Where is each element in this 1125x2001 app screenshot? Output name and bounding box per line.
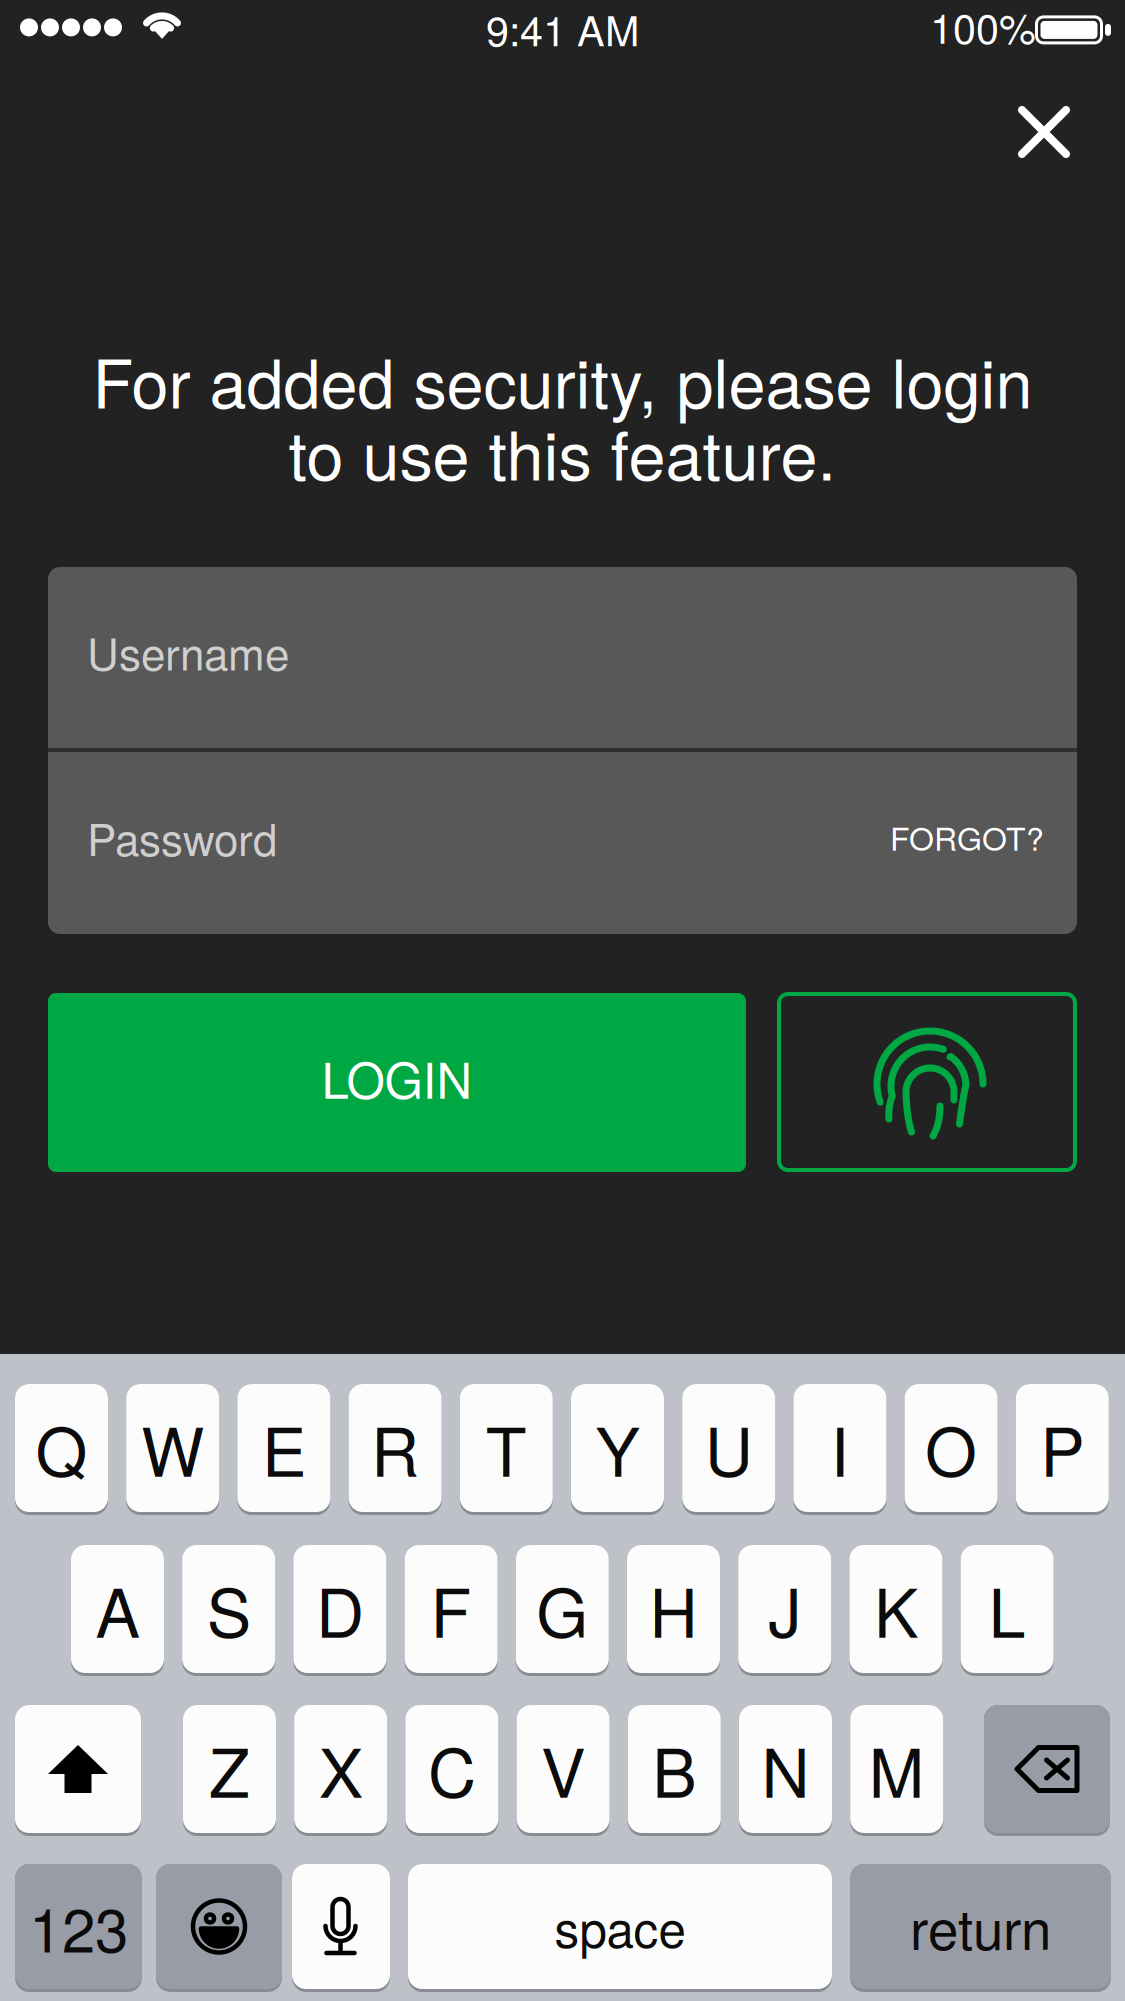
button[interactable]: Username [48, 567, 1077, 748]
staticText: FORGOT? [890, 814, 1044, 860]
staticText: M [869, 1721, 925, 1817]
staticText: 123 [29, 1883, 128, 1969]
button[interactable]: X [294, 1705, 387, 1836]
staticText: space [554, 1891, 685, 1962]
staticText: to use this feature. [288, 404, 836, 499]
button[interactable]: V [517, 1705, 610, 1836]
staticText: J [768, 1561, 801, 1657]
button[interactable]: Shift [15, 1705, 141, 1836]
staticText: Password [87, 805, 277, 868]
staticText: X [319, 1721, 363, 1817]
button[interactable]: LOGIN [48, 993, 746, 1172]
button[interactable]: I [793, 1384, 886, 1515]
button[interactable]: J [738, 1545, 831, 1676]
button[interactable]: C [405, 1705, 498, 1836]
staticText: R [371, 1400, 419, 1496]
staticText: For added security, please login [92, 332, 1032, 427]
button[interactable]: 123 [15, 1864, 142, 1992]
button[interactable]: Password [48, 748, 1077, 934]
staticText: O [925, 1400, 977, 1496]
staticText: I [830, 1400, 849, 1496]
staticText: Username [87, 620, 289, 683]
staticText: Q [35, 1400, 87, 1496]
button[interactable]: F [405, 1545, 498, 1676]
button[interactable]: Z [183, 1705, 276, 1836]
staticText: A [95, 1561, 139, 1657]
button[interactable]: B [628, 1705, 721, 1836]
button[interactable]: return [850, 1864, 1111, 1992]
staticText: N [761, 1721, 809, 1817]
staticText: B [652, 1721, 696, 1817]
button[interactable]: W [126, 1384, 219, 1515]
button[interactable]: U [682, 1384, 775, 1515]
button[interactable]: G [516, 1545, 609, 1676]
button[interactable]: S [182, 1545, 275, 1676]
staticText: V [541, 1721, 585, 1817]
button[interactable]: L [961, 1545, 1054, 1676]
button[interactable]: Q [15, 1384, 108, 1515]
button[interactable]: P [1016, 1384, 1109, 1515]
button[interactable]: A [71, 1545, 164, 1676]
staticText: W [141, 1400, 204, 1496]
staticText: K [874, 1561, 918, 1657]
staticText: H [649, 1561, 697, 1657]
staticText: Y [595, 1400, 639, 1496]
staticText: T [486, 1400, 527, 1496]
staticText: 100% [930, 0, 1036, 56]
staticText: LOGIN [321, 1042, 472, 1113]
staticText: G [536, 1561, 588, 1657]
staticText: F [431, 1561, 472, 1657]
button[interactable]: Dictation [292, 1864, 390, 1992]
button[interactable]: space [408, 1864, 832, 1992]
staticText: Z [209, 1721, 250, 1817]
button[interactable]: O [905, 1384, 998, 1515]
staticText: U [705, 1400, 753, 1496]
button[interactable]: R [349, 1384, 442, 1515]
button[interactable]: E [237, 1384, 330, 1515]
staticText: 9:41 AM [486, 0, 639, 58]
staticText: return [910, 1887, 1051, 1966]
staticText: C [428, 1721, 476, 1817]
button[interactable]: FORGOT? [870, 784, 1064, 890]
staticText: D [316, 1561, 364, 1657]
staticText: P [1040, 1400, 1084, 1496]
staticText: S [207, 1561, 251, 1657]
button[interactable]: Delete [984, 1705, 1110, 1836]
button[interactable]: Sign in with Touch ID [777, 992, 1077, 1172]
button[interactable]: Emoji [156, 1864, 282, 1992]
staticText: L [989, 1561, 1026, 1657]
button[interactable]: H [627, 1545, 720, 1676]
button[interactable]: M [850, 1705, 943, 1836]
button[interactable]: N [739, 1705, 832, 1836]
button[interactable]: D [293, 1545, 386, 1676]
staticText: E [262, 1400, 306, 1496]
button[interactable]: T [460, 1384, 553, 1515]
button[interactable]: Close [998, 86, 1090, 178]
button[interactable]: K [849, 1545, 942, 1676]
button[interactable]: Y [571, 1384, 664, 1515]
